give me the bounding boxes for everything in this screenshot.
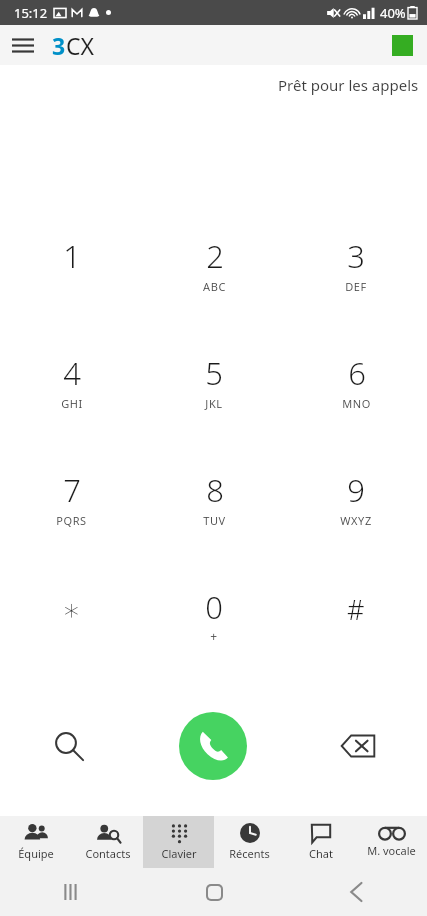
staticText: 5 (205, 352, 223, 394)
staticText: CX (66, 30, 95, 61)
button[interactable]: Équipe (0, 816, 72, 868)
staticText: TUV (203, 513, 226, 528)
button[interactable]: 8 (143, 447, 285, 564)
button[interactable]: 6 (285, 330, 427, 447)
staticText: 6 (348, 352, 366, 394)
button[interactable]: Home (143, 868, 285, 916)
button[interactable]: Menu (0, 25, 46, 65)
staticText: 2 (206, 235, 224, 277)
button[interactable]: Clavier (143, 816, 214, 868)
staticText: Contacts (85, 846, 131, 861)
staticText: 3 (52, 30, 66, 61)
staticText: ABC (203, 279, 226, 294)
staticText: Prêt pour les appels (278, 75, 419, 95)
staticText: WXYZ (340, 513, 372, 528)
button[interactable]: 5 (143, 330, 285, 447)
staticText: 0 (205, 586, 223, 628)
staticText: Clavier (161, 846, 197, 861)
staticText: 15:12 (14, 4, 48, 22)
staticText: Récents (229, 846, 270, 861)
staticText: # (347, 591, 365, 628)
button[interactable]: Chat (285, 816, 356, 868)
button[interactable]: 2 (143, 213, 285, 330)
button[interactable]: Star (0, 564, 143, 664)
button[interactable]: 0 (143, 564, 285, 664)
staticText: 8 (206, 469, 224, 511)
staticText: Équipe (18, 846, 54, 861)
staticText: + (210, 628, 218, 644)
button[interactable]: Back (285, 868, 427, 916)
button[interactable]: 3 (285, 213, 427, 330)
button[interactable]: Status (379, 25, 425, 65)
button[interactable]: Pound (285, 564, 427, 664)
button[interactable]: Contacts (72, 816, 143, 868)
staticText: 3 (347, 235, 365, 277)
button[interactable]: Recents (0, 868, 143, 916)
button[interactable]: Search (0, 698, 137, 794)
button[interactable]: 1 (0, 213, 143, 330)
button[interactable]: 4 (0, 330, 143, 447)
staticText: 9 (347, 469, 365, 511)
staticText: 40% (380, 4, 406, 22)
button[interactable]: 9 (285, 447, 427, 564)
staticText: GHI (61, 396, 83, 411)
staticText: 1 (63, 235, 81, 277)
staticText: 4 (63, 352, 81, 394)
staticText: 7 (63, 469, 81, 511)
staticText: M. vocale (367, 843, 416, 858)
staticText: MNO (342, 396, 371, 411)
button[interactable]: Récents (214, 816, 285, 868)
staticText: PQRS (56, 513, 87, 528)
staticText: Chat (309, 846, 333, 861)
staticText: JKL (205, 396, 223, 411)
button[interactable]: Call (179, 712, 247, 780)
button[interactable]: 7 (0, 447, 143, 564)
button[interactable]: Backspace (289, 698, 427, 794)
staticText: ∗ (62, 592, 81, 627)
button[interactable]: M. vocale (356, 816, 427, 868)
staticText: DEF (345, 279, 367, 294)
